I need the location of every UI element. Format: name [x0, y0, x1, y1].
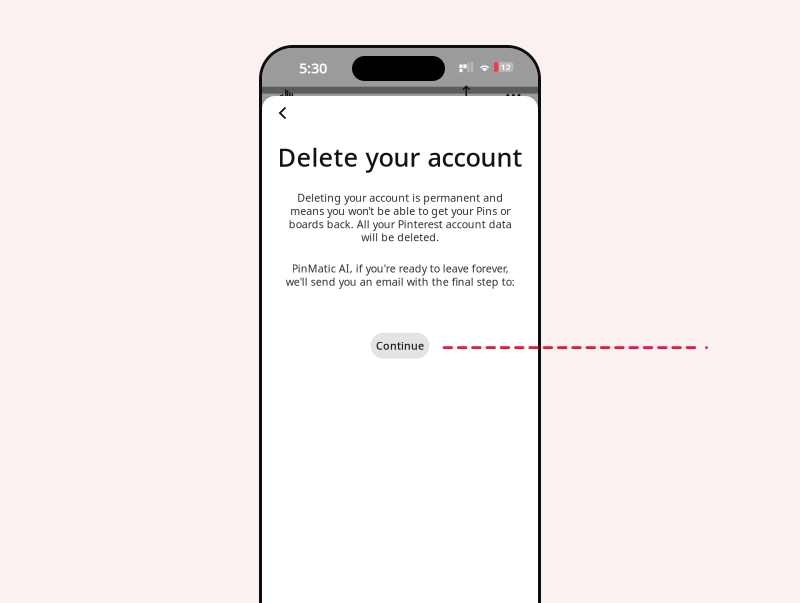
button[interactable]: Continue — [370, 333, 429, 359]
staticText: Continue — [376, 339, 424, 353]
staticText: 5:30 — [299, 58, 327, 78]
staticText: PinMatic AI, if you're ready to leave fo… — [285, 261, 514, 289]
button[interactable]: Back — [262, 96, 538, 130]
staticText: 12 — [500, 61, 510, 73]
staticText: Delete your account — [277, 140, 522, 174]
staticText: Deleting your account is permanent and m… — [288, 191, 511, 244]
